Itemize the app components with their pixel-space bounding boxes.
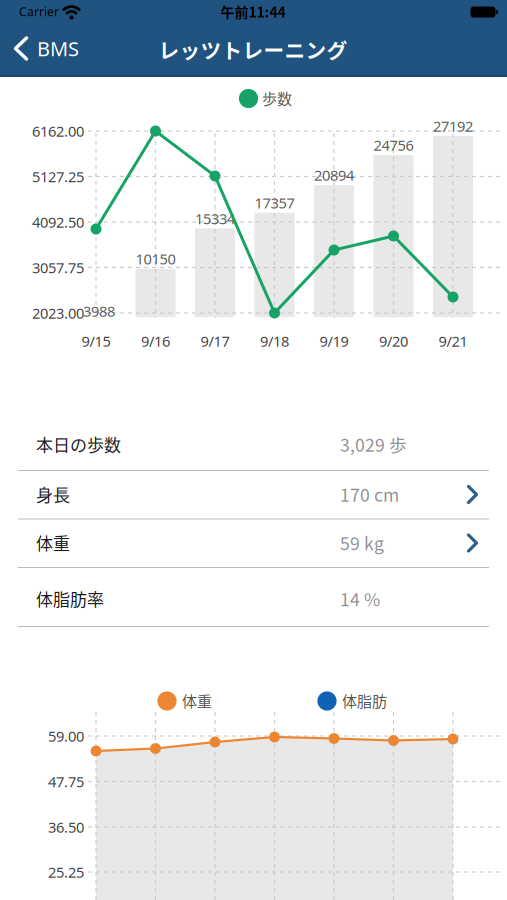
staticText: 5127.25 <box>32 167 84 186</box>
staticText: 59.00 <box>48 726 84 746</box>
staticText: 9/15 <box>81 331 110 351</box>
staticText: 3,029 歩 <box>340 431 407 457</box>
staticText: 10150 <box>135 249 175 269</box>
staticText: 体脂肪 <box>342 690 387 711</box>
staticText: 36.50 <box>48 817 84 837</box>
staticText: 170 cm <box>340 481 399 507</box>
staticText: 24756 <box>373 135 413 155</box>
staticText: 体重 <box>182 690 212 711</box>
staticText: BMS <box>37 35 79 62</box>
staticText: 午前11:44 <box>220 1 285 22</box>
staticText: 本日の歩数 <box>36 432 121 456</box>
staticText: 27192 <box>433 116 473 136</box>
staticText: 14 % <box>340 586 380 611</box>
staticText: 身長 <box>36 482 70 506</box>
staticText: 歩数 <box>262 87 292 109</box>
staticText: 4092.50 <box>32 212 84 232</box>
staticText: 20894 <box>314 165 354 185</box>
staticText: 9/21 <box>438 331 467 351</box>
staticText: 47.75 <box>48 772 84 791</box>
button[interactable]: BMS <box>0 25 100 72</box>
staticText: 15334 <box>195 209 235 228</box>
staticText: 体重 <box>36 530 70 555</box>
staticText: 17357 <box>254 193 294 212</box>
button[interactable]: 体重 <box>0 518 507 566</box>
staticText: 3057.75 <box>32 258 84 277</box>
staticText: 3988 <box>83 301 115 321</box>
staticText: 体脂肪率 <box>36 586 104 611</box>
button[interactable]: 身長 <box>0 470 507 518</box>
staticText: 9/20 <box>379 331 408 351</box>
staticText: Carrier <box>19 3 59 19</box>
staticText: 2023.00 <box>32 303 84 323</box>
staticText: レッツトレーニング <box>158 34 347 64</box>
staticText: 25.25 <box>48 862 84 882</box>
staticText: 9/19 <box>319 331 348 351</box>
staticText: 9/16 <box>141 331 170 351</box>
staticText: 9/18 <box>260 331 289 351</box>
staticText: 9/17 <box>200 331 229 351</box>
staticText: 6162.00 <box>32 121 84 141</box>
staticText: 59 kg <box>340 530 384 555</box>
